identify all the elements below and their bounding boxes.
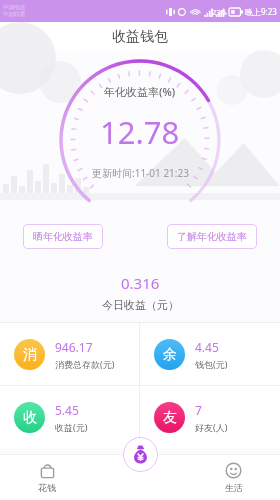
staticText: 花钱 <box>38 482 56 493</box>
button[interactable]: 了解年化收益率 <box>167 224 257 249</box>
staticText: 4.45 <box>195 339 219 355</box>
button[interactable]: 友 <box>140 386 280 448</box>
staticText: 收益钱包 <box>112 28 168 46</box>
button[interactable]: 花钱 <box>0 454 94 500</box>
staticText: 年化收益率(%) <box>104 84 176 99</box>
staticText: 消 <box>23 346 37 364</box>
staticText: 了解年化收益率 <box>177 230 247 243</box>
staticText: 中国联通 <box>3 11 25 18</box>
staticText: 好友(人) <box>195 421 228 433</box>
staticText: 更新时间:11-01 21:23 <box>92 166 189 180</box>
staticText: 余 <box>163 346 177 364</box>
staticText: 友 <box>163 409 177 427</box>
button[interactable]: 收 <box>0 386 139 448</box>
staticText: 中国电信 <box>3 4 25 11</box>
staticText: 946.17 <box>55 339 93 355</box>
button[interactable]: 晒年化收益率 <box>23 224 103 249</box>
button[interactable]: 余 <box>140 323 280 385</box>
button[interactable]: 钱包 <box>123 437 158 472</box>
staticText: 23% <box>212 7 227 17</box>
staticText: 5.45 <box>55 402 79 418</box>
staticText: 今日收益（元） <box>102 298 179 312</box>
staticText: 晒年化收益率 <box>33 230 93 243</box>
staticText: 12.78 <box>100 111 180 153</box>
button[interactable]: 生活 <box>187 454 280 500</box>
staticText: 0.316 <box>121 273 160 293</box>
staticText: 晚上9:23 <box>245 6 277 17</box>
staticText: 消费总存款(元) <box>55 358 115 370</box>
button[interactable]: 消 <box>0 323 139 385</box>
staticText: 钱包(元) <box>195 358 228 370</box>
staticText: 收 <box>23 409 37 427</box>
staticText: 生活 <box>225 482 243 493</box>
staticText: 收益(元) <box>55 421 88 433</box>
staticText: 7 <box>195 402 202 418</box>
